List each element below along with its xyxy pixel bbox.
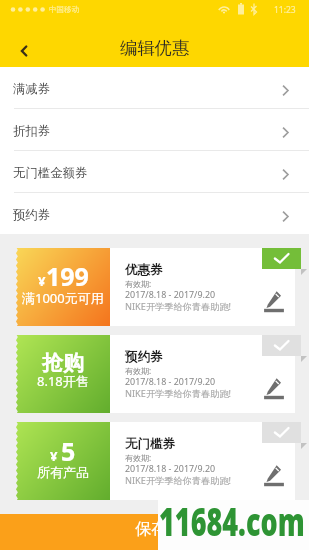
button[interactable]: Edit	[261, 375, 287, 401]
staticText: 有效期:	[125, 452, 152, 463]
staticText: 5	[61, 434, 76, 468]
button[interactable]: 预约券	[0, 193, 309, 234]
staticText: NIKE开学季给你青春助跑!	[125, 387, 232, 400]
staticText: 所有产品	[37, 464, 89, 480]
button[interactable]: 满减券	[0, 67, 309, 108]
staticText: 有效期:	[125, 365, 152, 376]
staticText: 8.18开售	[37, 372, 89, 390]
staticText: 2017/8.18 - 2017/9.20	[125, 375, 216, 387]
staticText: 199	[46, 259, 89, 293]
staticText: 满1000元可用	[22, 289, 104, 307]
button[interactable]: Select coupon	[262, 422, 309, 450]
staticText: 有效期:	[125, 278, 152, 289]
staticText: 11:23	[274, 4, 296, 16]
staticText: ¥	[38, 272, 46, 290]
staticText: 2017/8.18 - 2017/9.20	[125, 462, 216, 474]
staticText: ¥	[50, 447, 61, 465]
staticText: NIKE开学季给你青春助跑!	[125, 474, 232, 487]
button[interactable]: Select coupon	[262, 248, 309, 276]
staticText: 2017/8.18 - 2017/9.20	[125, 288, 216, 300]
button[interactable]: Edit	[261, 288, 287, 314]
staticText: 无门槛金额券	[13, 165, 88, 181]
staticText: 编辑优惠	[120, 37, 190, 59]
staticText: 11684.com	[159, 494, 305, 547]
staticText: 无门槛券	[125, 436, 175, 452]
button[interactable]: Back	[9, 36, 39, 66]
staticText: 预约券	[13, 207, 51, 223]
staticText: 抢购	[42, 350, 84, 376]
staticText: 保存	[135, 519, 167, 539]
button[interactable]	[16, 422, 295, 500]
button[interactable]: 折扣券	[0, 109, 309, 150]
staticText: 折扣券	[13, 123, 51, 139]
button[interactable]: Edit	[261, 462, 287, 488]
staticText: 中国移动	[49, 5, 79, 14]
button[interactable]	[16, 335, 295, 413]
button[interactable]	[16, 248, 295, 326]
staticText: NIKE开学季给你青春助跑!	[125, 300, 232, 313]
button[interactable]: 无门槛金额券	[0, 151, 309, 192]
button[interactable]: 保存	[0, 514, 309, 550]
staticText: 满减券	[13, 81, 51, 97]
button[interactable]: Select coupon	[262, 335, 309, 363]
staticText: 预约券	[125, 349, 163, 365]
staticText: 优惠券	[125, 262, 163, 278]
